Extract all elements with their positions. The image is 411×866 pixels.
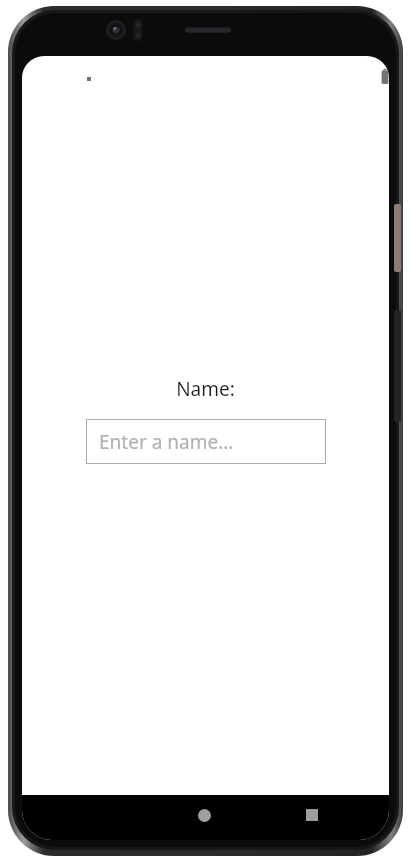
button[interactable]: Home xyxy=(198,809,228,839)
other: Power xyxy=(394,204,401,272)
staticText: Name: xyxy=(176,376,235,402)
button[interactable]: Enter a name... xyxy=(86,419,326,464)
staticText: Enter a name... xyxy=(99,429,234,455)
button[interactable]: Recent apps xyxy=(306,809,336,839)
